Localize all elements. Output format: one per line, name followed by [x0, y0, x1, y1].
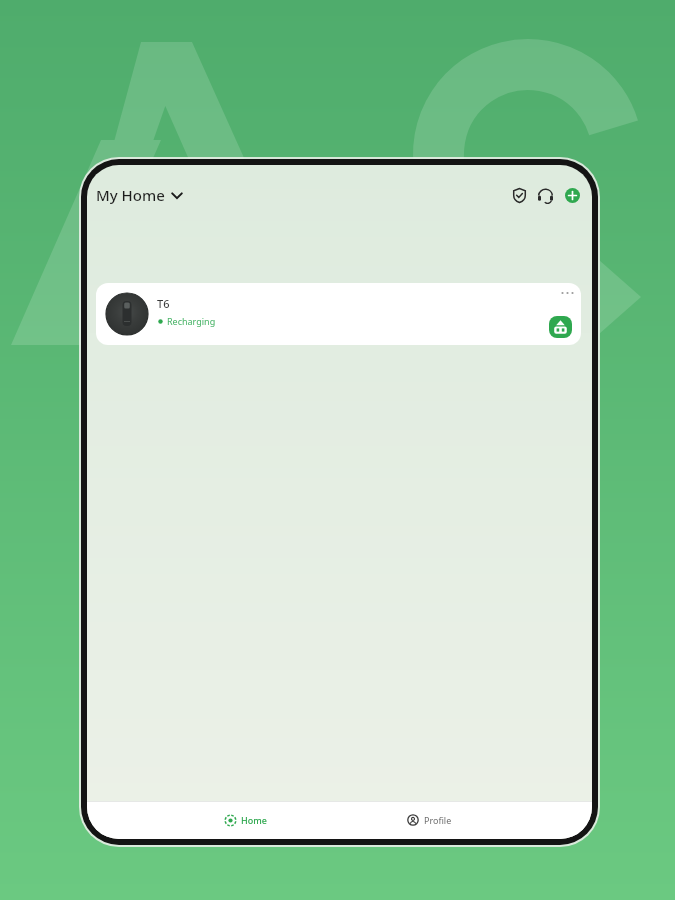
- button[interactable]: My Home: [96, 181, 184, 209]
- button[interactable]: Profile: [381, 806, 477, 834]
- button[interactable]: [534, 184, 557, 207]
- staticText: Recharging: [167, 315, 216, 327]
- button[interactable]: [508, 184, 531, 207]
- staticText: Home: [241, 814, 267, 826]
- button[interactable]: [558, 285, 578, 301]
- button[interactable]: [565, 188, 580, 203]
- button[interactable]: T6: [96, 283, 581, 345]
- button[interactable]: [549, 316, 572, 338]
- staticText: My Home: [96, 185, 165, 205]
- staticText: Profile: [424, 814, 452, 826]
- button[interactable]: Home: [200, 806, 290, 834]
- staticText: T6: [157, 296, 170, 311]
